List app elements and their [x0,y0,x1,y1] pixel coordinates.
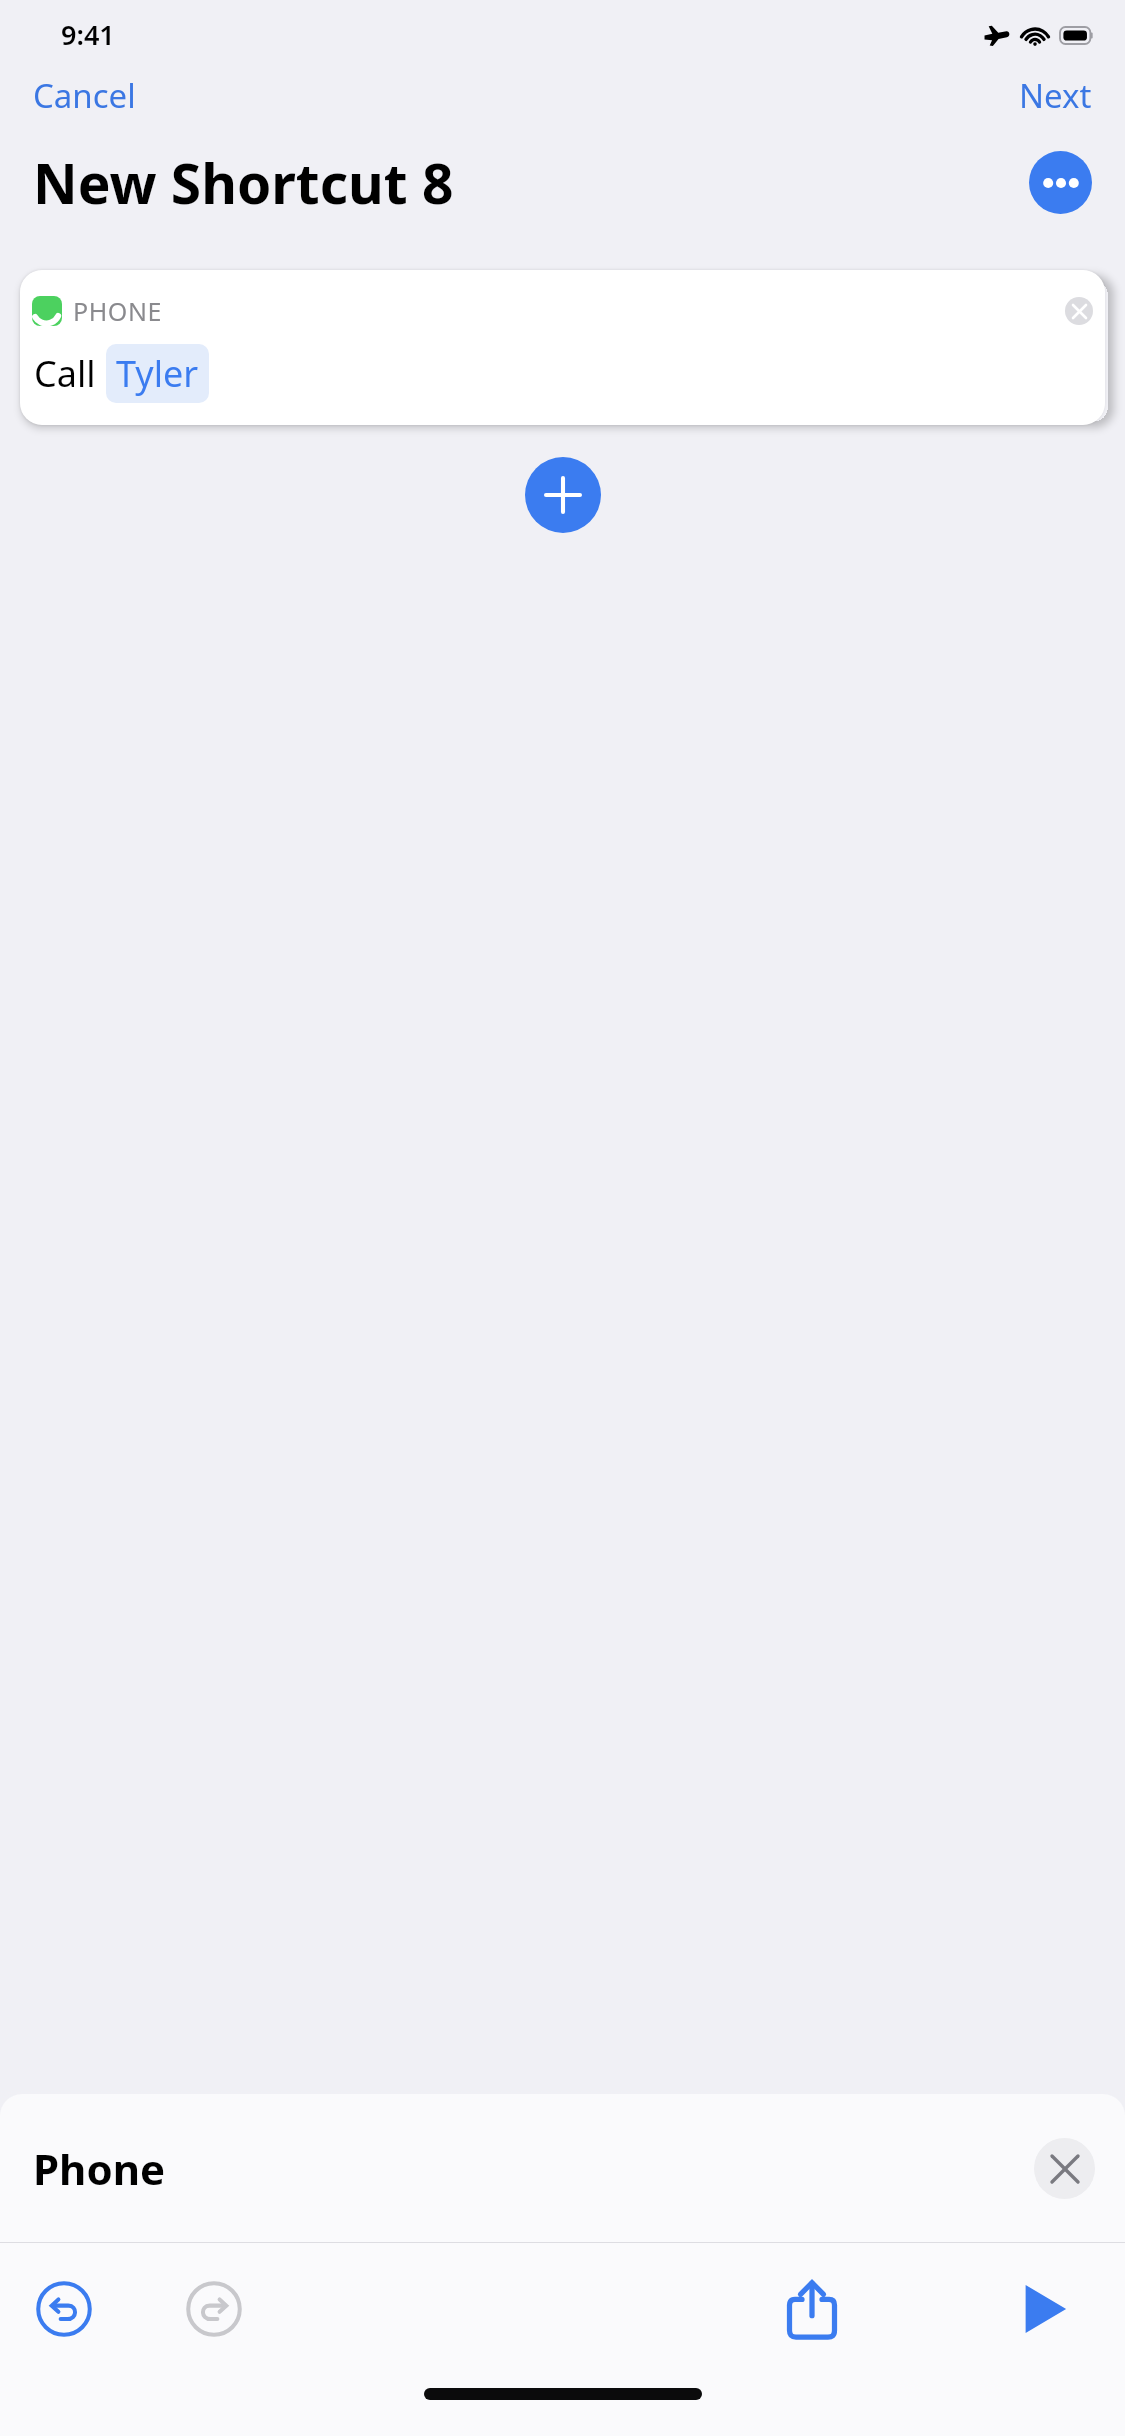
button[interactable]: More options [1029,151,1092,214]
staticText: 9:41 [61,16,115,53]
staticText: New Shortcut 8 [33,145,454,220]
button[interactable]: Cancel [0,65,152,126]
staticText: Cancel [33,73,136,118]
staticText: PHONE [73,294,163,328]
staticText: Phone [33,2140,166,2197]
button[interactable]: Add action [525,457,601,533]
button[interactable]: PHONE [20,270,1105,425]
button[interactable]: Redo [177,2272,251,2346]
button[interactable]: Delete action [1065,297,1093,325]
staticText: Next [1019,73,1092,118]
staticText: Tyler [116,349,199,398]
button[interactable]: Phone [0,2094,1125,2242]
button[interactable]: Undo [27,2272,101,2346]
staticText: Call [34,349,96,398]
button[interactable]: Run shortcut [1005,2269,1085,2349]
button[interactable]: Clear [1034,2138,1095,2199]
button[interactable]: Share [772,2269,852,2349]
button[interactable]: Tyler [106,344,209,403]
button[interactable]: Next [1003,65,1125,126]
